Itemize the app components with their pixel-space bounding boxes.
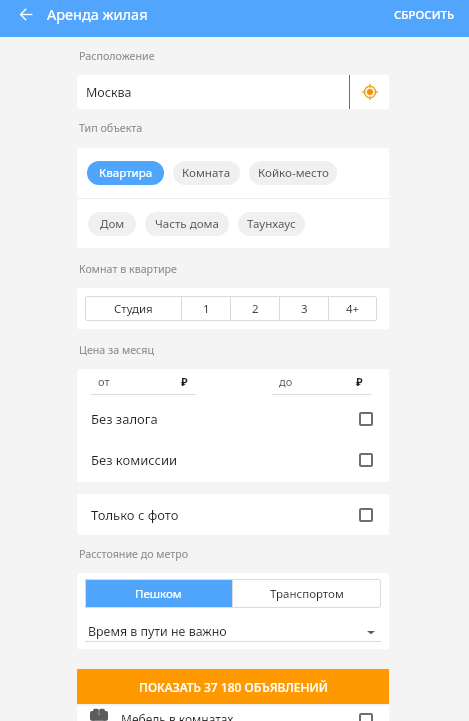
button[interactable]: СБРОСИТЬ (380, 0, 469, 32)
staticText: Мебель в комнатах (121, 711, 234, 721)
staticText: Пешком (135, 586, 182, 602)
staticText: Без залога (91, 410, 359, 428)
button[interactable]: Койко-место (249, 161, 337, 185)
button[interactable]: Моё местоположение (350, 75, 389, 109)
button[interactable]: от (91, 369, 196, 400)
staticText: Комната (182, 165, 231, 181)
staticText: 2 (252, 301, 259, 317)
button[interactable]: Без залога (77, 400, 389, 438)
staticText: Комнат в квартире (79, 262, 178, 277)
button[interactable]: Часть дома (145, 212, 229, 236)
staticText: Цена за месяц (79, 343, 154, 358)
button[interactable]: до (272, 369, 371, 400)
staticText: СБРОСИТЬ (394, 7, 455, 23)
staticText: Квартира (99, 165, 153, 181)
staticText: Студия (114, 301, 153, 317)
staticText: ₽ (356, 374, 363, 389)
staticText: Время в пути не важно (88, 623, 367, 640)
staticText: Расстояние до метро (79, 547, 189, 562)
staticText: Дом (100, 216, 125, 232)
button[interactable]: Время в пути не важно (85, 623, 381, 640)
button[interactable]: Только с фото (77, 494, 389, 535)
button[interactable]: Квартира (87, 161, 164, 185)
button[interactable]: 3 (280, 296, 328, 321)
button[interactable]: Студия (85, 296, 181, 321)
staticText: Транспортом (270, 586, 344, 602)
button[interactable]: 4+ (329, 296, 377, 321)
staticText: ₽ (181, 374, 188, 389)
staticText: Часть дома (155, 216, 219, 232)
button[interactable]: Таунхаус (238, 212, 305, 236)
staticText: от (98, 374, 110, 389)
staticText: ПОКАЗАТЬ 37 180 ОБЪЯВЛЕНИЙ (139, 679, 328, 695)
button[interactable]: Мебель в комнатах (77, 706, 389, 721)
button[interactable]: Дом (88, 212, 136, 236)
staticText: Таунхаус (247, 216, 296, 232)
button[interactable]: ПОКАЗАТЬ 37 180 ОБЪЯВЛЕНИЙ (77, 669, 389, 704)
button[interactable]: Без комиссии (77, 438, 389, 482)
staticText: Без комиссии (91, 451, 359, 469)
staticText: 3 (301, 301, 308, 317)
button[interactable]: Комната (173, 161, 240, 185)
button[interactable]: 1 (182, 296, 230, 321)
staticText: Тип объекта (79, 121, 143, 136)
staticText: Аренда жилая (47, 4, 148, 24)
staticText: Только с фото (91, 506, 359, 524)
staticText: Расположение (79, 49, 155, 64)
staticText: 1 (203, 301, 210, 317)
button[interactable]: Транспортом (233, 579, 381, 608)
button[interactable]: Москва (77, 75, 349, 109)
staticText: 4+ (346, 301, 360, 317)
staticText: Москва (86, 84, 132, 101)
staticText: до (279, 374, 293, 389)
button[interactable]: Назад (8, 0, 45, 33)
button[interactable]: Пешком (85, 579, 232, 608)
button[interactable]: 2 (231, 296, 279, 321)
staticText: Койко-место (258, 165, 329, 181)
